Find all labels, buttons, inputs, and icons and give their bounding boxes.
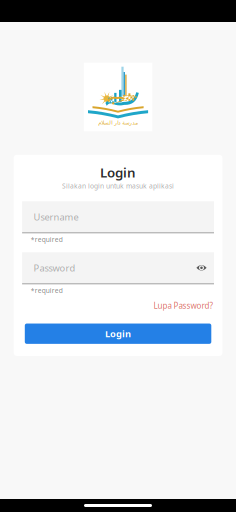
staticText: Lupa Password? [153, 300, 212, 311]
button[interactable]: Username [22, 201, 214, 233]
staticText: *required [31, 235, 63, 244]
button[interactable]: Password [22, 252, 214, 284]
button[interactable]: Login [25, 323, 211, 344]
staticText: *required [31, 286, 63, 295]
staticText: Password [33, 262, 75, 274]
staticText: Login [105, 327, 131, 340]
staticText: Username [33, 211, 78, 223]
staticText: Silakan login untuk masuk aplikasi [62, 181, 174, 190]
staticText: Login [100, 163, 136, 181]
button[interactable]: Lupa Password? [22, 300, 214, 311]
staticText: مدرسة دار السلام [98, 120, 138, 126]
